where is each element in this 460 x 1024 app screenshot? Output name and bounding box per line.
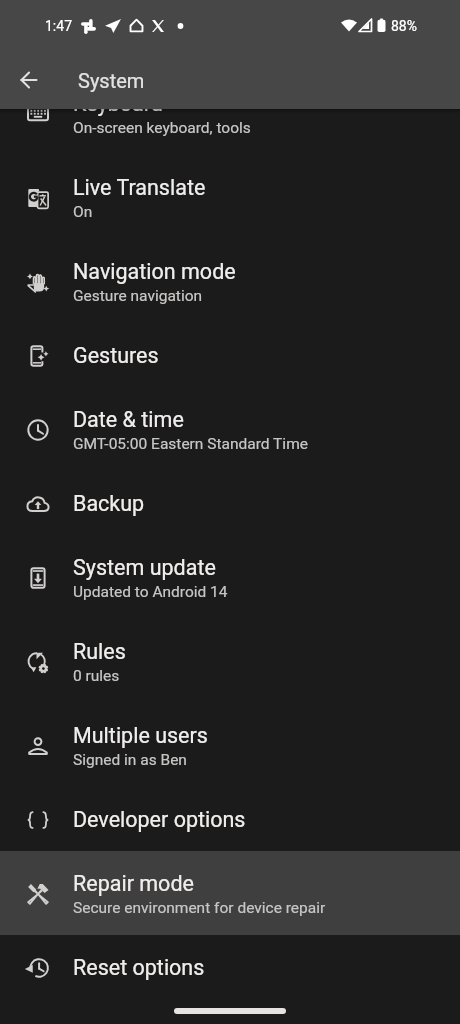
staticText: Keyboard <box>73 109 163 116</box>
staticText: Updated to Android 14 <box>73 583 228 601</box>
staticText: Gestures <box>73 343 159 368</box>
staticText: Backup <box>73 491 145 516</box>
staticText: Signed in as Ben <box>73 751 187 769</box>
button[interactable]: Back <box>11 62 47 98</box>
button[interactable]: Developer options <box>0 787 460 851</box>
button[interactable]: Rules <box>0 619 460 703</box>
staticText: Developer options <box>73 807 246 832</box>
staticText: Secure environment for device repair <box>73 899 326 917</box>
staticText: On-screen keyboard, tools <box>73 119 251 137</box>
staticText: Multiple users <box>73 723 208 748</box>
staticText: On <box>73 203 93 221</box>
staticText: System <box>78 69 145 92</box>
button[interactable]: Reset options <box>0 935 460 986</box>
staticText: Reset options <box>73 955 205 980</box>
staticText: Navigation mode <box>73 259 236 284</box>
staticText: 88% <box>391 18 417 34</box>
staticText: System update <box>73 555 216 580</box>
staticText: Gesture navigation <box>73 287 203 305</box>
button[interactable]: System update <box>0 535 460 619</box>
button[interactable]: Date & time <box>0 387 460 471</box>
staticText: GMT-05:00 Eastern Standard Time <box>73 435 308 453</box>
staticText: 1:47 <box>45 18 72 34</box>
button[interactable]: Navigation mode <box>0 239 460 323</box>
staticText: Date & time <box>73 407 184 432</box>
button[interactable]: Backup <box>0 471 460 535</box>
staticText: 0 rules <box>73 667 120 685</box>
staticText: Rules <box>73 639 126 664</box>
button[interactable]: Live Translate <box>0 155 460 239</box>
button[interactable]: Gestures <box>0 323 460 387</box>
button[interactable]: Repair mode <box>0 851 460 935</box>
staticText: Repair mode <box>73 871 194 896</box>
button[interactable]: Keyboard <box>0 109 460 155</box>
staticText: Live Translate <box>73 175 206 200</box>
button[interactable]: Multiple users <box>0 703 460 787</box>
